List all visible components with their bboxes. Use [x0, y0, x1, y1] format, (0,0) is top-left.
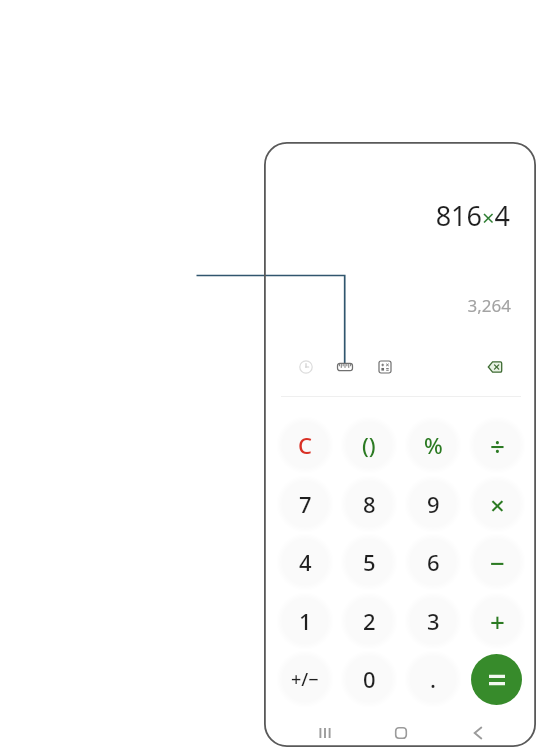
staticText: 0 [363, 664, 376, 694]
staticText: 6 [427, 547, 440, 577]
button[interactable]: . [403, 650, 463, 708]
staticText: 2 [363, 606, 376, 636]
staticText: +/− [291, 667, 319, 692]
button[interactable]: History [290, 351, 322, 383]
staticText: 3 [427, 606, 440, 636]
staticText: C [298, 430, 312, 460]
button[interactable]: +/− [275, 650, 335, 708]
button[interactable]: ÷ [467, 416, 527, 474]
button[interactable]: Equals [471, 654, 522, 705]
button[interactable]: Back [462, 717, 494, 748]
button[interactable]: Backspace [479, 351, 511, 383]
staticText: 5 [363, 547, 376, 577]
button[interactable]: × [467, 475, 527, 533]
button[interactable]: 3 [403, 592, 463, 650]
button[interactable]: Recents [309, 717, 341, 748]
button[interactable]: C [275, 416, 335, 474]
staticText: 3,264 [467, 294, 511, 317]
staticText: 7 [299, 489, 312, 519]
button[interactable]: Home [385, 717, 417, 748]
staticText: 4 [299, 547, 312, 577]
staticText: − [490, 545, 505, 580]
button[interactable]: 8 [339, 475, 399, 533]
staticText: . [430, 664, 436, 694]
button[interactable]: Unit converter [329, 351, 361, 383]
staticText: 9 [427, 489, 440, 519]
button[interactable]: 4 [275, 533, 335, 591]
staticText: 1 [299, 606, 312, 636]
staticText: 8 [363, 489, 376, 519]
button[interactable]: 6 [403, 533, 463, 591]
button[interactable]: 2 [339, 592, 399, 650]
staticText: 816×4 [435, 197, 510, 234]
staticText: % [424, 430, 443, 460]
button[interactable]: % [403, 416, 463, 474]
button[interactable]: − [467, 533, 527, 591]
button[interactable]: Scientific calculator [369, 351, 401, 383]
staticText: ÷ [490, 428, 505, 463]
button[interactable]: 9 [403, 475, 463, 533]
staticText: + [490, 604, 505, 639]
button[interactable]: 1 [275, 592, 335, 650]
button[interactable]: () [339, 416, 399, 474]
button[interactable]: + [467, 592, 527, 650]
staticText: () [362, 430, 376, 460]
button[interactable]: 0 [339, 650, 399, 708]
staticText: × [490, 487, 505, 522]
button[interactable]: 7 [275, 475, 335, 533]
button[interactable]: 5 [339, 533, 399, 591]
